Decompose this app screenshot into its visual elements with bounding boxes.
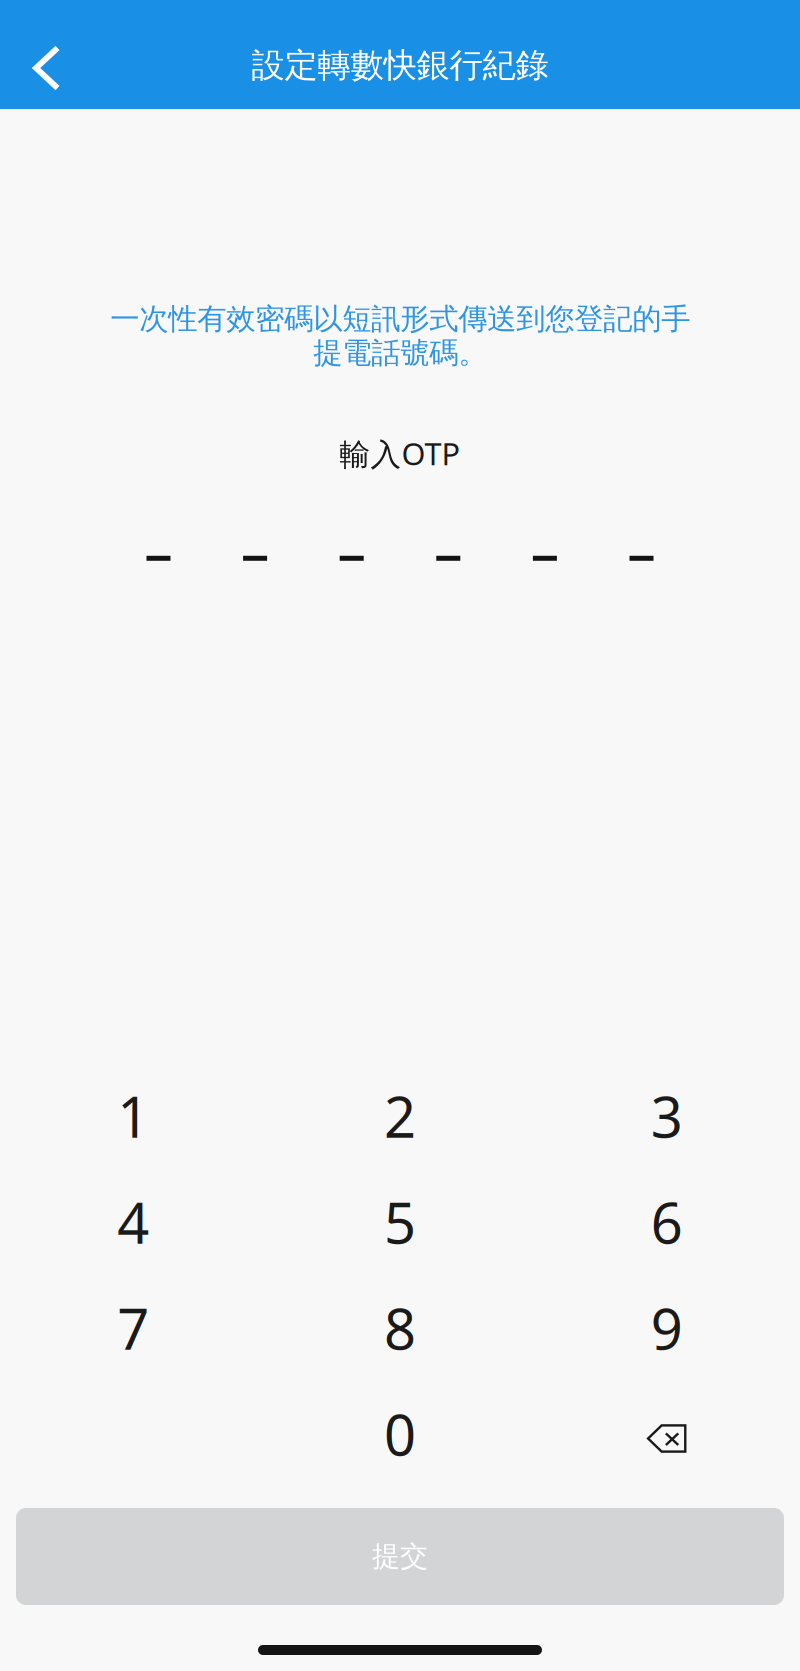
staticText: 一次性有效密碼以短訊形式傳送到您登記的手 提電話號碼。 bbox=[110, 301, 690, 371]
staticText: 提交 bbox=[372, 1539, 428, 1574]
button[interactable]: 6 bbox=[533, 1169, 800, 1275]
button[interactable]: 9 bbox=[533, 1275, 800, 1381]
staticText: 3 bbox=[651, 1079, 683, 1153]
staticText: 4 bbox=[117, 1185, 149, 1259]
button[interactable]: 8 bbox=[267, 1275, 533, 1381]
button[interactable]: Delete bbox=[533, 1381, 800, 1487]
button[interactable]: 0 bbox=[267, 1381, 533, 1487]
staticText: 輸入OTP bbox=[339, 433, 460, 474]
staticText: 0 bbox=[384, 1397, 416, 1471]
button[interactable]: 2 bbox=[267, 1063, 533, 1169]
button[interactable]: 5 bbox=[267, 1169, 533, 1275]
button[interactable]: 4 bbox=[0, 1169, 267, 1275]
button[interactable]: 7 bbox=[0, 1275, 267, 1381]
staticText: 6 bbox=[651, 1185, 683, 1259]
staticText: 設定轉數快銀行紀錄 bbox=[251, 45, 548, 86]
staticText: 7 bbox=[117, 1291, 149, 1365]
staticText: 1 bbox=[117, 1079, 149, 1153]
staticText: 9 bbox=[651, 1291, 683, 1365]
button[interactable]: 3 bbox=[533, 1063, 800, 1169]
staticText: 8 bbox=[384, 1291, 416, 1365]
button[interactable]: Back bbox=[0, 0, 80, 111]
button[interactable]: 提交 bbox=[16, 1508, 784, 1605]
staticText: 5 bbox=[384, 1185, 416, 1259]
button[interactable]: 1 bbox=[0, 1063, 267, 1169]
staticText: 2 bbox=[384, 1079, 416, 1153]
